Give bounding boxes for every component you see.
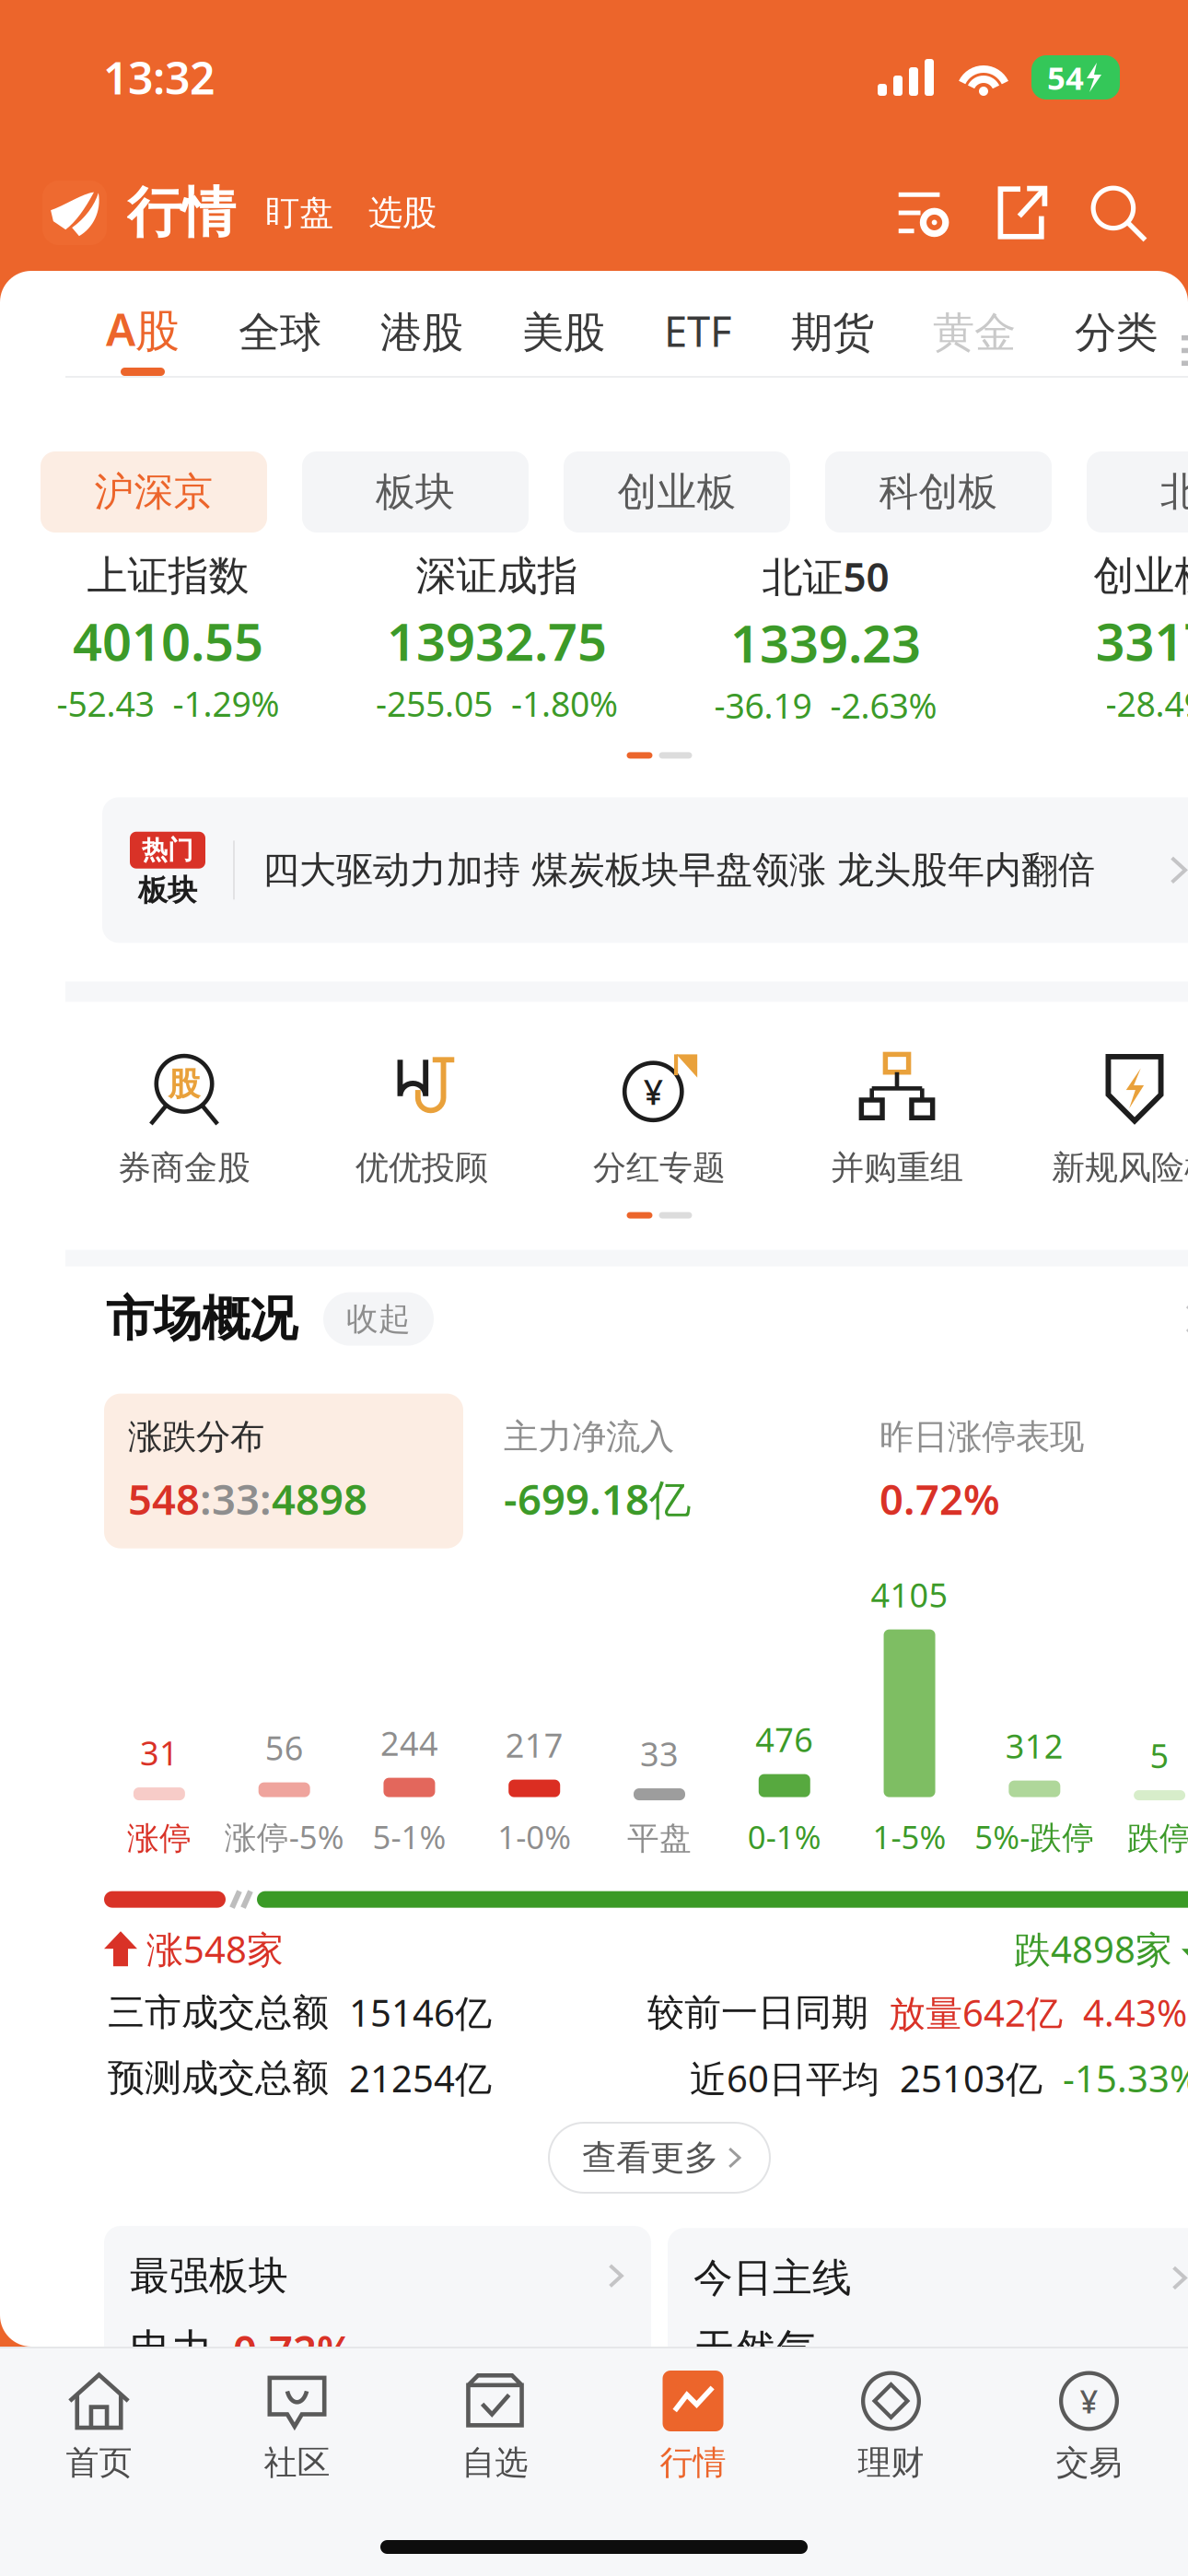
staticText: 行情 — [127, 180, 236, 246]
staticText: 1-5% — [873, 1816, 946, 1858]
button[interactable]: 昨日涨停表现 — [856, 1394, 1188, 1548]
button[interactable]: 黄金 — [933, 307, 1016, 376]
staticText: 选股 — [368, 192, 437, 234]
staticText: 天然气 — [693, 2324, 818, 2376]
button[interactable]: 主力净流入 — [480, 1394, 839, 1548]
staticText: 13932.75 — [387, 606, 607, 675]
button[interactable]: 并购重组 — [778, 1050, 1016, 1188]
staticText: 板块 — [376, 468, 455, 516]
staticText: 5 — [1150, 1733, 1169, 1777]
staticText: 行情 — [660, 2442, 726, 2483]
staticText: 1339.23 — [730, 608, 921, 677]
button[interactable]: Filter — [897, 186, 950, 240]
staticText: 社区 — [264, 2442, 330, 2483]
staticText: 三市成交总额 — [108, 1990, 329, 2035]
staticText: 3317 — [1095, 606, 1188, 675]
button[interactable]: 新规风险榜 — [1016, 1050, 1188, 1188]
staticText: 四大驱动力加持 煤炭板块早盘领涨 龙头股年内翻倍 — [262, 847, 1095, 893]
staticText: 548 — [128, 1471, 200, 1526]
staticText: 涨停-5% — [224, 1816, 344, 1858]
staticText: -36.19 — [714, 683, 812, 728]
staticText: 476 — [755, 1717, 813, 1761]
button[interactable]: 期货 — [791, 307, 874, 376]
staticText: 期货 — [791, 307, 874, 358]
staticText: 近60日平均 — [690, 2054, 879, 2102]
button[interactable]: 科创板 — [825, 451, 1052, 533]
button[interactable]: 创业板 — [564, 451, 790, 533]
button[interactable]: 股 — [65, 1050, 303, 1188]
staticText: 新规风险榜 — [1052, 1147, 1188, 1188]
staticText: 4105 — [871, 1573, 948, 1617]
staticText: 涨548家 — [146, 1924, 284, 1973]
button[interactable]: ¥ — [990, 2371, 1188, 2483]
staticText: 并购重组 — [831, 1147, 963, 1188]
staticText: 244 — [380, 1721, 438, 1765]
button[interactable]: 深证成指 — [332, 551, 661, 726]
button[interactable]: More categories — [1182, 329, 1188, 356]
button[interactable]: 盯盘 — [265, 192, 333, 234]
staticText: 56 — [265, 1725, 304, 1769]
button[interactable]: Search — [1089, 183, 1147, 242]
button[interactable]: 全球 — [239, 307, 321, 376]
staticText: -255.05 — [376, 680, 493, 726]
button[interactable]: 北证50 — [661, 549, 990, 728]
button[interactable]: 今日主线 — [668, 2228, 1188, 2388]
staticText: -2.63% — [830, 683, 937, 728]
staticText: 21254亿 — [349, 2054, 492, 2102]
staticText: 交易 — [1056, 2442, 1122, 2483]
staticText: 0-1% — [748, 1816, 821, 1858]
staticText: 昨日涨停表现 — [879, 1416, 1084, 1458]
staticText: -28.49 — [1106, 680, 1188, 726]
button[interactable]: 理财 — [792, 2371, 990, 2483]
button[interactable]: 自选 — [396, 2371, 594, 2483]
button[interactable]: Share — [993, 185, 1048, 240]
button[interactable]: 美股 — [522, 307, 605, 376]
button[interactable]: 热门 — [65, 779, 1188, 982]
button[interactable]: Market overview detail — [1174, 1300, 1188, 1338]
button[interactable]: ETF — [664, 303, 732, 376]
button[interactable]: 行情 — [594, 2371, 792, 2483]
staticText: 15146亿 — [349, 1988, 492, 2037]
staticText: 预测成交总额 — [108, 2055, 329, 2101]
staticText: 217 — [505, 1723, 563, 1767]
button[interactable]: 板块 — [302, 451, 529, 533]
button[interactable]: 社区 — [198, 2371, 396, 2483]
staticText: 0.72% — [233, 2322, 354, 2378]
staticText: 主力净流入 — [504, 1416, 674, 1458]
staticText: 电力 — [130, 2324, 213, 2376]
staticText: 北证 — [1160, 468, 1188, 516]
staticText: 市场概况 — [106, 1290, 297, 1348]
staticText: 自选 — [462, 2442, 528, 2483]
staticText: 今日主线 — [693, 2254, 852, 2302]
staticText: 股 — [168, 1065, 200, 1104]
button[interactable]: 创业板 — [990, 551, 1188, 726]
button[interactable]: ¥ — [541, 1050, 778, 1188]
staticText: 0.72% — [879, 1471, 1000, 1526]
button[interactable]: 沪深京 — [41, 451, 267, 533]
button[interactable]: 查看更多 — [549, 2123, 770, 2193]
staticText: 科创板 — [879, 468, 998, 516]
staticText: 首页 — [66, 2442, 132, 2483]
staticText: 板块 — [138, 872, 197, 908]
staticText: :33: — [200, 1471, 272, 1526]
button[interactable]: 选股 — [368, 192, 437, 234]
button[interactable]: 收起 — [323, 1292, 434, 1346]
staticText: 券商金股 — [118, 1147, 250, 1188]
staticText: ¥ — [1080, 2380, 1098, 2422]
staticText: 25103亿 — [900, 2054, 1042, 2102]
button[interactable]: 上证指数 — [4, 551, 332, 726]
button[interactable]: 北证 — [1087, 451, 1188, 533]
button[interactable]: 首页 — [0, 2371, 198, 2483]
button[interactable]: 涨跌分布 — [104, 1394, 463, 1548]
button[interactable]: A股 — [106, 299, 180, 376]
staticText: 查看更多 — [582, 2137, 718, 2179]
button[interactable]: 最强板块 — [104, 2226, 651, 2390]
staticText: 5-1% — [372, 1816, 446, 1858]
staticText: 4.43% — [1083, 1988, 1187, 2037]
staticText: 跌4898家 — [1014, 1924, 1172, 1973]
button[interactable]: 优优投顾 — [303, 1050, 541, 1188]
staticText: -699.18亿 — [504, 1471, 691, 1526]
staticText: 沪深京 — [94, 468, 213, 516]
button[interactable]: 分类 — [1075, 307, 1158, 376]
button[interactable]: 港股 — [380, 307, 463, 376]
